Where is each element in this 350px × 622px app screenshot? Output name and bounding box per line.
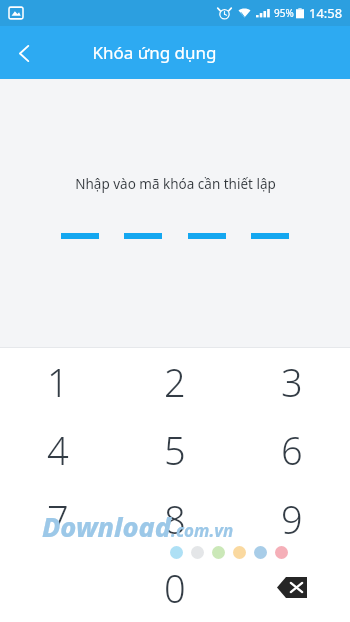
staticText: 0 (164, 562, 186, 614)
staticText: 1 (47, 356, 69, 408)
staticText: Khóa ứng dụng (92, 41, 217, 64)
staticText: 95% (274, 6, 294, 20)
button[interactable]: 4 (0, 416, 116, 484)
button[interactable]: 8 (116, 484, 233, 553)
staticText: 6 (281, 424, 303, 476)
button[interactable]: 7 (0, 484, 116, 553)
staticText: 9 (281, 493, 303, 545)
staticText: Nhập vào mã khóa cần thiết lập (75, 175, 276, 193)
button[interactable]: 6 (233, 416, 350, 484)
staticText: 5 (164, 424, 186, 476)
button[interactable]: 3 (233, 348, 350, 416)
button[interactable]: 0 (116, 553, 233, 622)
staticText: 2 (164, 356, 186, 408)
button[interactable]: 2 (116, 348, 233, 416)
button[interactable]: 9 (233, 484, 350, 553)
button[interactable]: Back (0, 29, 48, 77)
button[interactable]: 1 (0, 348, 116, 416)
staticText: 3 (281, 356, 303, 408)
staticText: 7 (47, 493, 69, 545)
button[interactable]: 5 (116, 416, 233, 484)
staticText: 14:58 (309, 4, 343, 22)
button[interactable]: Backspace (233, 553, 350, 622)
staticText: 4 (47, 424, 69, 476)
staticText: 8 (164, 493, 186, 545)
staticText: Download (42, 508, 171, 545)
staticText: .com.vn (171, 519, 234, 542)
